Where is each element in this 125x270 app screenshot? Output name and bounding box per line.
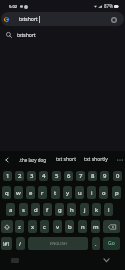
button[interactable]: txt short [52,151,80,168]
button[interactable]: Space [28,237,88,250]
staticText: n [81,223,85,231]
button[interactable]: y [63,186,72,199]
button[interactable]: x [28,220,37,233]
staticText: txtshort [19,16,38,23]
staticText: x [31,223,35,231]
staticText: ENGLISH [50,241,67,246]
button[interactable]: p [112,186,121,199]
staticText: k [95,206,99,214]
staticText: y [66,189,70,197]
staticText: txt shortly [84,156,108,163]
staticText: i [91,189,93,197]
staticText: .the lazy dog [19,157,46,163]
button[interactable]: w [14,186,23,199]
staticText: j [84,206,86,214]
staticText: b [68,223,72,231]
button[interactable]: b [65,220,74,233]
button[interactable]: 7 [76,171,85,181]
button[interactable]: g [55,203,64,216]
button[interactable]: Previous suggestions [0,151,13,168]
button[interactable]: Clear query [108,14,119,25]
staticText: 1 [6,172,10,180]
button[interactable]: Shift [1,220,13,233]
button[interactable]: 4 [39,171,48,181]
staticText: e [29,189,33,197]
button[interactable]: l [104,203,113,216]
button[interactable]: e [26,186,35,199]
staticText: / [19,240,22,247]
staticText: 4 [42,172,46,180]
button[interactable]: r [38,186,47,199]
staticText: 3 [30,172,34,180]
button[interactable]: txt shortly [80,151,111,168]
staticText: . [95,240,97,247]
button[interactable]: 5 [52,171,61,181]
button[interactable]: i [87,186,96,199]
staticText: z [18,223,21,231]
staticText: p [115,189,119,197]
button[interactable]: !#1 [1,237,12,250]
button[interactable]: More suggestions [114,151,125,168]
button[interactable]: Go [103,237,120,250]
staticText: c [43,223,46,231]
staticText: d [34,206,38,214]
staticText: r [41,189,44,197]
staticText: 5 [55,172,59,180]
button[interactable]: q [2,186,11,199]
button[interactable]: 3 [27,171,36,181]
button[interactable]: z [15,220,24,233]
button[interactable]: 1 [3,171,12,181]
button[interactable]: / [16,237,25,250]
staticText: 2 [18,172,22,180]
button[interactable]: txtshort [1,12,124,26]
staticText: 6 [67,172,71,180]
staticText: w [16,189,21,197]
button[interactable]: v [53,220,62,233]
button[interactable]: Change keyboard [9,256,20,265]
staticText: v [56,223,60,231]
button[interactable]: .the lazy dog [13,151,52,168]
button[interactable]: j [80,203,89,216]
staticText: t [54,189,57,197]
staticText: l [108,206,110,214]
button[interactable]: s [19,203,28,216]
staticText: f [46,206,49,214]
button[interactable]: 2 [15,171,24,181]
button[interactable]: 8 [88,171,97,181]
staticText: h [70,206,74,214]
button[interactable]: . [92,237,100,250]
button[interactable]: Hide keyboard [101,254,112,265]
button[interactable]: 0 [113,171,122,181]
staticText: q [5,189,9,197]
staticText: 0 [116,172,120,180]
staticText: m [93,223,99,231]
staticText: o [102,189,106,197]
button[interactable]: c [40,220,49,233]
staticText: u [78,189,82,197]
button[interactable]: Backspace [103,220,120,233]
button[interactable]: k [92,203,101,216]
staticText: g [58,206,62,214]
staticText: Go [108,240,115,247]
button[interactable]: t [51,186,60,199]
button[interactable]: txtshort [0,28,125,42]
staticText: txtshort [17,32,36,39]
staticText: 5:02 [9,4,17,9]
button[interactable]: 6 [64,171,73,181]
button[interactable]: u [75,186,84,199]
button[interactable]: 9 [100,171,109,181]
button[interactable]: h [67,203,76,216]
button[interactable]: o [99,186,108,199]
staticText: !#1 [3,241,10,247]
button[interactable]: n [78,220,87,233]
staticText: 87% [104,3,113,9]
staticText: a [9,206,13,214]
staticText: 9 [103,172,107,180]
button[interactable]: m [91,220,100,233]
staticText: 7 [79,172,83,180]
button[interactable]: f [43,203,52,216]
button[interactable]: a [6,203,15,216]
staticText: 8 [91,172,95,180]
button[interactable]: d [31,203,40,216]
staticText: s [22,206,25,214]
